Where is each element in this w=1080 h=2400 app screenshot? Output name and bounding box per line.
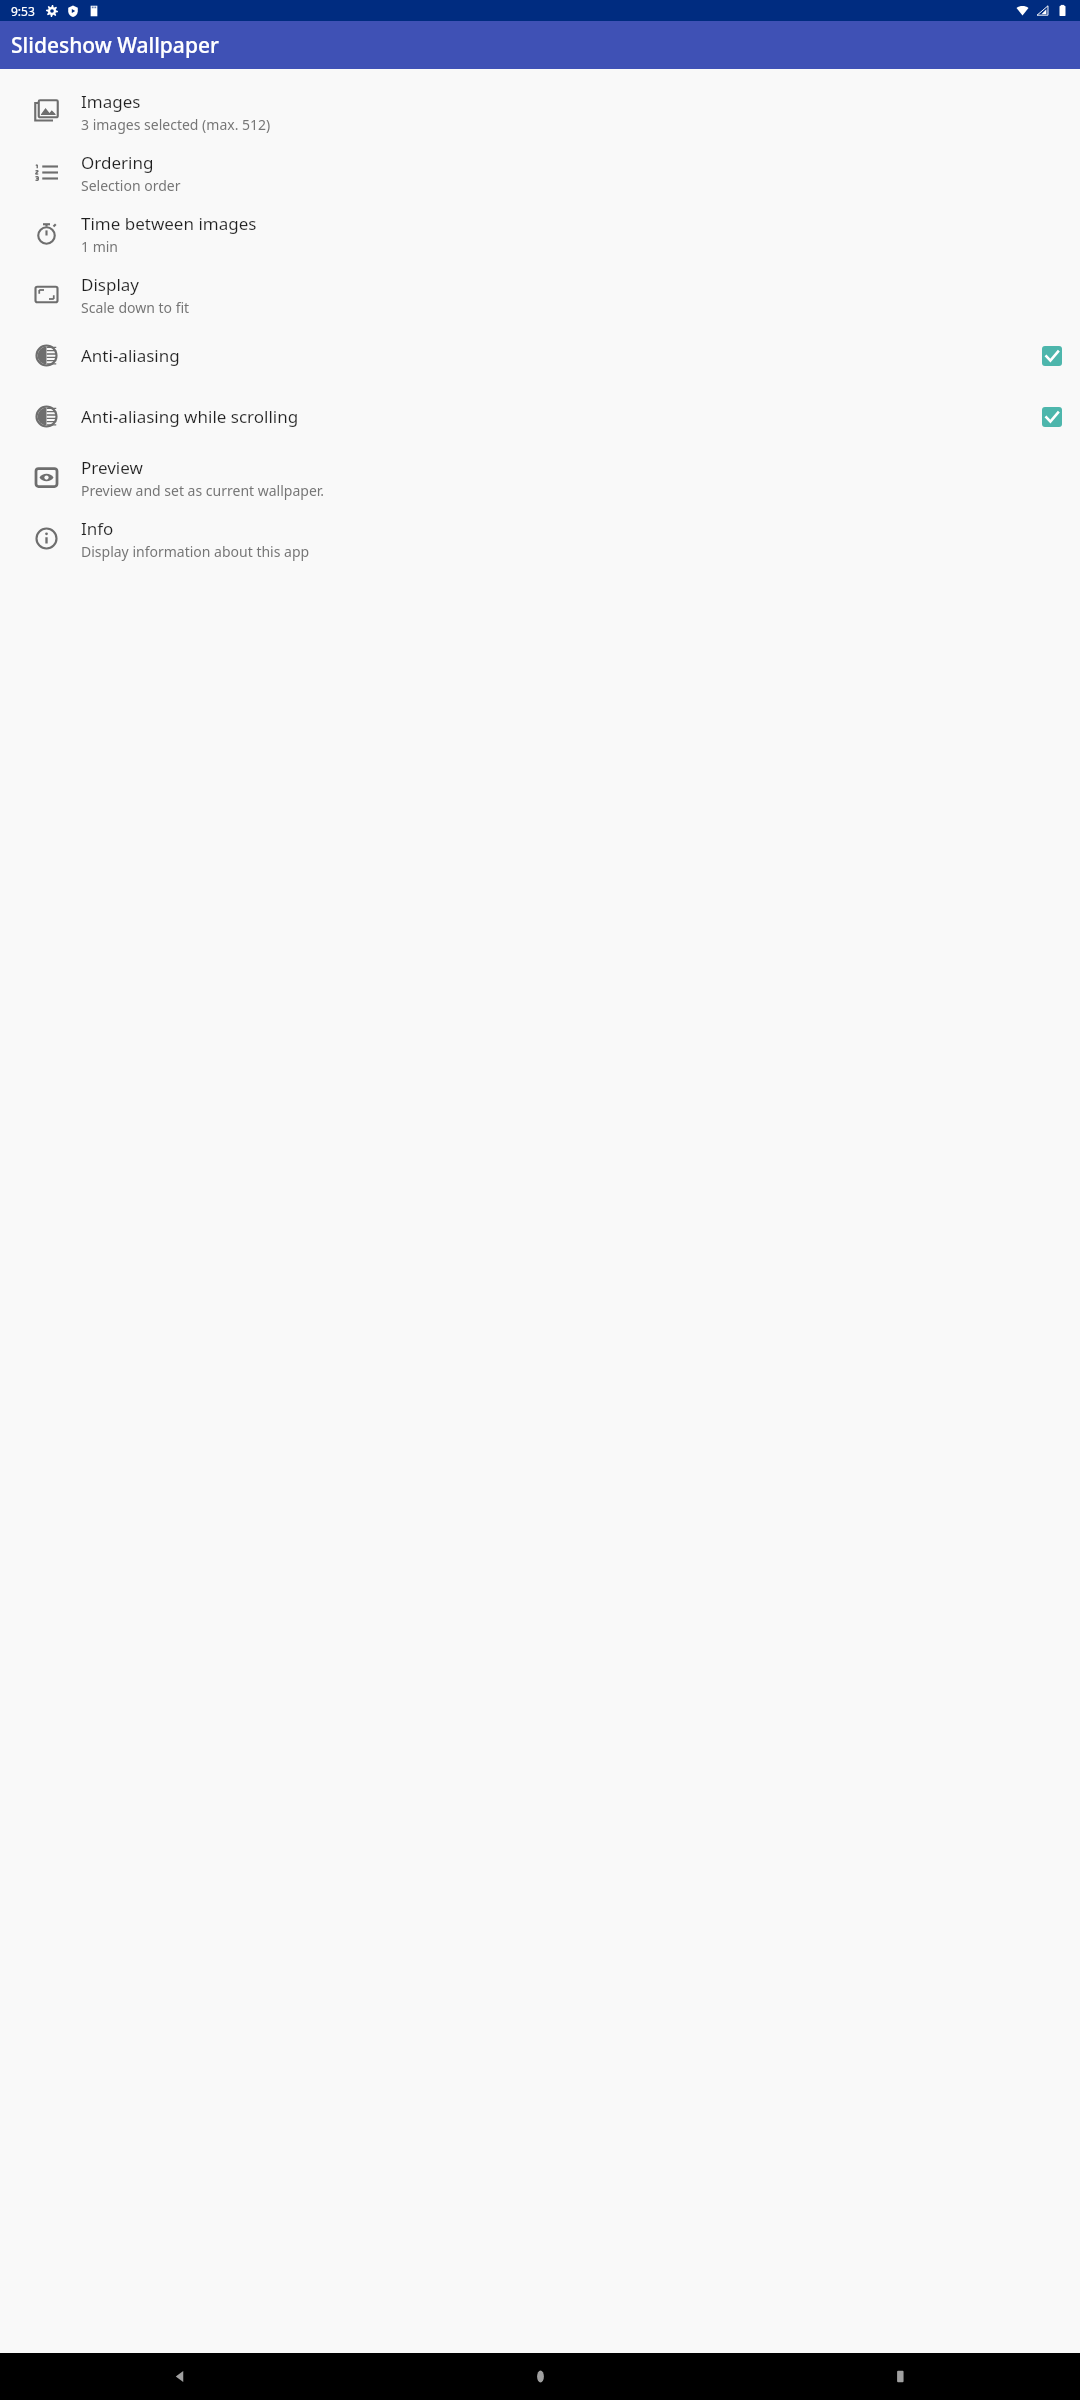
button[interactable]: Anti-aliasing while scrolling checkbox [1035, 400, 1069, 434]
staticText: Selection order [81, 176, 181, 195]
staticText: Images [81, 90, 141, 113]
staticText: 1 min [81, 237, 119, 256]
other: Anti-aliasing [34, 343, 59, 368]
other: Ordering [34, 160, 59, 185]
staticText: Display [81, 273, 139, 296]
staticText: Scale down to fit [81, 298, 190, 317]
staticText: Ordering [81, 151, 154, 174]
staticText: Anti-aliasing [81, 344, 180, 367]
staticText: Display information about this app [81, 542, 310, 561]
button[interactable]: Display [0, 264, 1080, 325]
staticText: Slideshow Wallpaper [11, 31, 219, 60]
button[interactable]: Info [0, 508, 1080, 569]
button[interactable]: Anti-aliasing while scrolling [0, 386, 1080, 447]
other: Images [34, 99, 59, 124]
button[interactable]: Images [0, 81, 1080, 142]
staticText: Time between images [81, 212, 257, 235]
other: Preview [34, 465, 59, 490]
button[interactable]: Home [360, 2353, 720, 2400]
button[interactable]: Anti-aliasing [0, 325, 1080, 386]
other: Info [34, 526, 59, 551]
button[interactable]: Time between images [0, 203, 1080, 264]
button[interactable]: Preview [0, 447, 1080, 508]
staticText: 9:53 [11, 3, 35, 19]
other: Anti-aliasing while scrolling [34, 404, 59, 429]
staticText: Info [81, 517, 114, 540]
staticText: 3 images selected (max. 512) [81, 115, 271, 134]
button[interactable]: Back [0, 2353, 360, 2400]
staticText: Anti-aliasing while scrolling [81, 405, 299, 428]
button[interactable]: Recents [720, 2353, 1080, 2400]
other: Display [34, 282, 59, 307]
staticText: Preview [81, 456, 143, 479]
button[interactable]: Anti-aliasing checkbox [1035, 339, 1069, 373]
other: Time between images [34, 221, 59, 246]
staticText: Preview and set as current wallpaper. [81, 481, 325, 500]
button[interactable]: Ordering [0, 142, 1080, 203]
